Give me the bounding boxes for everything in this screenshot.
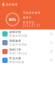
staticText: 常见问题 (9, 57, 21, 60)
staticText: 查看保障范围 (9, 34, 27, 37)
staticText: 保障中 (23, 16, 32, 19)
staticText: 理赔服务 (9, 39, 21, 42)
staticText: 帮助与客服 (9, 60, 24, 64)
button[interactable]: 理赔服务 (0, 38, 55, 47)
button[interactable]: 我的保障 (0, 0, 20, 9)
staticText: 查看订单记录 (9, 52, 27, 55)
staticText: 在线申请理赔 (9, 43, 27, 46)
staticText: 我的保障 (6, 3, 18, 6)
staticText: 86% (8, 17, 16, 22)
staticText: 手机意外保障 (23, 11, 41, 14)
staticText: 保障详情 (9, 30, 21, 34)
button[interactable]: 常见问题 (0, 56, 55, 65)
staticText: 我的订单 (9, 48, 21, 51)
button[interactable]: 保障详情 (0, 29, 55, 38)
button[interactable]: 我的订单 (0, 47, 55, 56)
staticText: 有效期至2025.01.01 (23, 21, 41, 28)
